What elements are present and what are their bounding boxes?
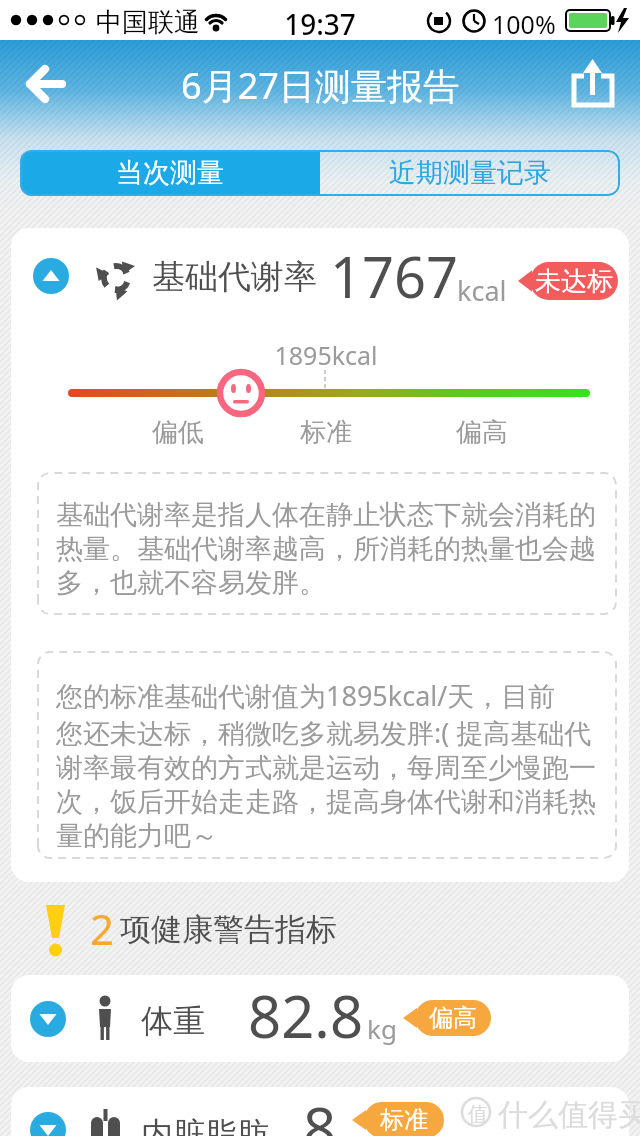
staticText: 1895kcal	[274, 338, 378, 372]
button[interactable]: 未达标	[518, 262, 618, 300]
button[interactable]	[33, 258, 69, 294]
button[interactable]: 内脏脂肪	[11, 1087, 629, 1136]
button[interactable]: 标准	[352, 1102, 444, 1136]
staticText: kg	[367, 1011, 397, 1046]
staticText: 您的标准基础代谢值为1895kcal/天，目前	[56, 677, 556, 714]
button[interactable]: 当次测量	[20, 150, 320, 196]
staticText: 100%	[492, 7, 556, 41]
button[interactable]: 近期测量记录	[320, 150, 620, 196]
staticText: 次，饭后开始走走路，提高身体代谢和消耗热	[56, 785, 596, 819]
staticText: 量的能力吧～	[56, 819, 218, 853]
staticText: kcal	[457, 272, 507, 309]
staticText: 2	[90, 900, 115, 957]
staticText: 当次测量	[116, 156, 224, 190]
staticText: 8	[303, 1088, 337, 1136]
staticText: 项健康警告指标	[120, 910, 337, 949]
staticText: 基础代谢率	[152, 256, 317, 298]
staticText: 中国联通	[96, 6, 200, 39]
staticText: 什么值得买	[498, 1096, 640, 1134]
staticText: 谢率最有效的方式就是运动，每周至少慢跑一	[56, 751, 596, 785]
staticText: 值	[468, 1102, 488, 1127]
staticText: 您还未达标，稍微吃多就易发胖:( 提高基础代	[56, 714, 592, 751]
staticText: 1767	[330, 238, 459, 314]
button[interactable]	[24, 62, 68, 106]
staticText: 近期测量记录	[389, 156, 551, 190]
staticText: 体重	[141, 1001, 205, 1041]
staticText: 6月27日测量报告	[181, 61, 459, 110]
button[interactable]	[30, 1112, 66, 1136]
staticText: 基础代谢率是指人体在静止状态下就会消耗的	[56, 498, 596, 532]
staticText: 19:37	[284, 5, 356, 43]
button[interactable]	[30, 1001, 66, 1037]
staticText: 热量。基础代谢率越高，所消耗的热量也会越	[56, 532, 596, 566]
staticText: 82.8	[248, 976, 364, 1055]
button[interactable]: 偏高	[403, 1000, 491, 1036]
staticText: 偏低	[152, 416, 204, 449]
staticText: 标准	[380, 1105, 428, 1135]
button[interactable]: 体重	[11, 975, 629, 1062]
staticText: 未达标	[535, 265, 613, 298]
staticText: 内脏脂肪	[141, 1114, 269, 1136]
staticText: 偏高	[456, 416, 508, 449]
staticText: 偏高	[429, 1003, 477, 1033]
button[interactable]	[570, 54, 618, 110]
staticText: 标准	[300, 416, 352, 449]
staticText: 多，也就不容易发胖。	[56, 566, 326, 600]
